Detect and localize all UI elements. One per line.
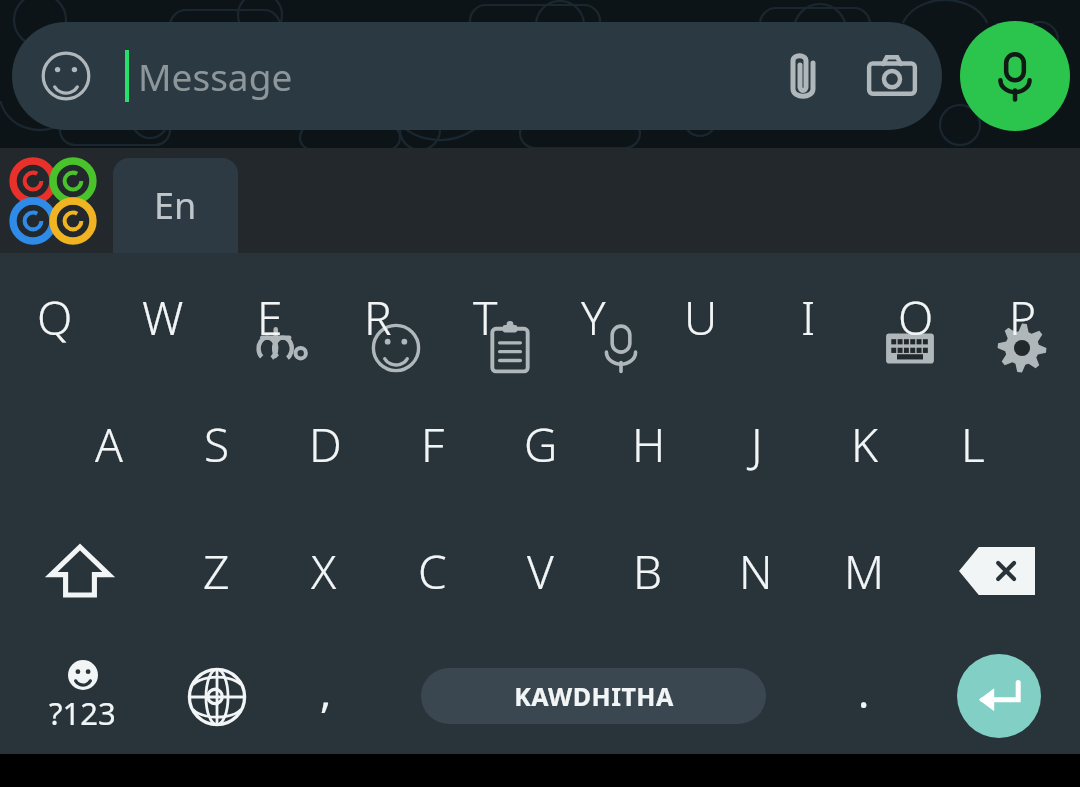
staticText: Y xyxy=(581,286,606,349)
button[interactable]: KAWDHITHA xyxy=(421,668,766,724)
staticText: C xyxy=(418,540,447,603)
staticText: X xyxy=(311,540,337,603)
staticText: V xyxy=(527,540,554,603)
button[interactable]: R xyxy=(324,264,432,370)
button[interactable]: Attach xyxy=(769,42,837,110)
staticText: W xyxy=(142,286,184,349)
staticText: S xyxy=(204,413,230,476)
button[interactable]: J xyxy=(703,391,811,497)
button[interactable]: Keyboard tool xyxy=(354,306,438,390)
staticText: G xyxy=(524,413,558,476)
button[interactable]: F xyxy=(379,391,487,497)
button[interactable]: Backspace xyxy=(943,518,1051,624)
button[interactable]: H xyxy=(595,391,703,497)
button[interactable]: Shift xyxy=(26,518,134,624)
button[interactable]: T xyxy=(431,264,539,370)
staticText: Message xyxy=(138,51,293,101)
button[interactable]: W xyxy=(109,264,217,370)
button[interactable]: V xyxy=(486,518,594,624)
staticText: D xyxy=(309,413,342,476)
button[interactable]: U xyxy=(647,264,755,370)
staticText: N xyxy=(739,540,773,603)
button[interactable]: Keyboard tool xyxy=(468,306,552,390)
button[interactable]: S xyxy=(163,391,271,497)
button[interactable]: I xyxy=(754,264,862,370)
staticText: F xyxy=(421,413,445,476)
button[interactable]: B xyxy=(594,518,702,624)
button[interactable]: M xyxy=(810,518,918,624)
staticText: B xyxy=(633,540,663,603)
staticText: O xyxy=(898,286,934,349)
staticText: A xyxy=(95,413,123,476)
button[interactable]: Y xyxy=(539,264,647,370)
button[interactable]: C xyxy=(378,518,486,624)
staticText: . xyxy=(858,663,870,720)
staticText: ?123 xyxy=(49,692,116,734)
button[interactable]: Emoji xyxy=(12,22,942,130)
button[interactable]: Camera xyxy=(857,41,927,111)
staticText: M xyxy=(844,540,885,603)
button[interactable]: , xyxy=(272,645,380,749)
button[interactable]: L xyxy=(919,391,1027,497)
staticText: KAWDHITHA xyxy=(514,679,674,713)
button[interactable]: . xyxy=(810,645,918,749)
button[interactable]: Keyboard tool xyxy=(980,306,1064,390)
staticText: U xyxy=(684,286,718,349)
button[interactable]: E xyxy=(216,264,324,370)
staticText: Q xyxy=(37,286,73,349)
staticText: P xyxy=(1009,286,1037,349)
button[interactable]: X xyxy=(270,518,378,624)
button[interactable]: Z xyxy=(162,518,270,624)
staticText: E xyxy=(257,286,283,349)
button[interactable]: K xyxy=(811,391,919,497)
staticText: T xyxy=(473,286,498,349)
button[interactable]: Keyboard tool xyxy=(579,306,663,390)
staticText: J xyxy=(751,413,763,476)
button[interactable]: Q xyxy=(1,264,109,370)
button[interactable]: O xyxy=(862,264,970,370)
staticText: R xyxy=(364,286,392,349)
button[interactable]: N xyxy=(702,518,810,624)
button[interactable]: Symbols xyxy=(28,645,136,749)
button[interactable]: Keyboard tool xyxy=(868,306,952,390)
button[interactable]: Change language xyxy=(163,645,271,749)
staticText: L xyxy=(961,413,985,476)
staticText: , xyxy=(320,663,332,720)
button[interactable]: Enter xyxy=(957,654,1041,738)
button[interactable]: D xyxy=(271,391,379,497)
staticText: Z xyxy=(203,540,230,603)
staticText: H xyxy=(632,413,666,476)
button[interactable]: Voice message xyxy=(960,21,1070,131)
button[interactable]: A xyxy=(55,391,163,497)
button[interactable]: Keyboard app xyxy=(12,160,94,242)
button[interactable]: Keyboard tool xyxy=(241,306,325,390)
staticText: En xyxy=(154,181,197,230)
button[interactable]: En xyxy=(113,158,238,253)
staticText: K xyxy=(851,413,879,476)
button[interactable]: G xyxy=(487,391,595,497)
staticText: I xyxy=(801,286,816,349)
button[interactable]: Emoji xyxy=(34,44,98,108)
button[interactable]: P xyxy=(969,264,1077,370)
